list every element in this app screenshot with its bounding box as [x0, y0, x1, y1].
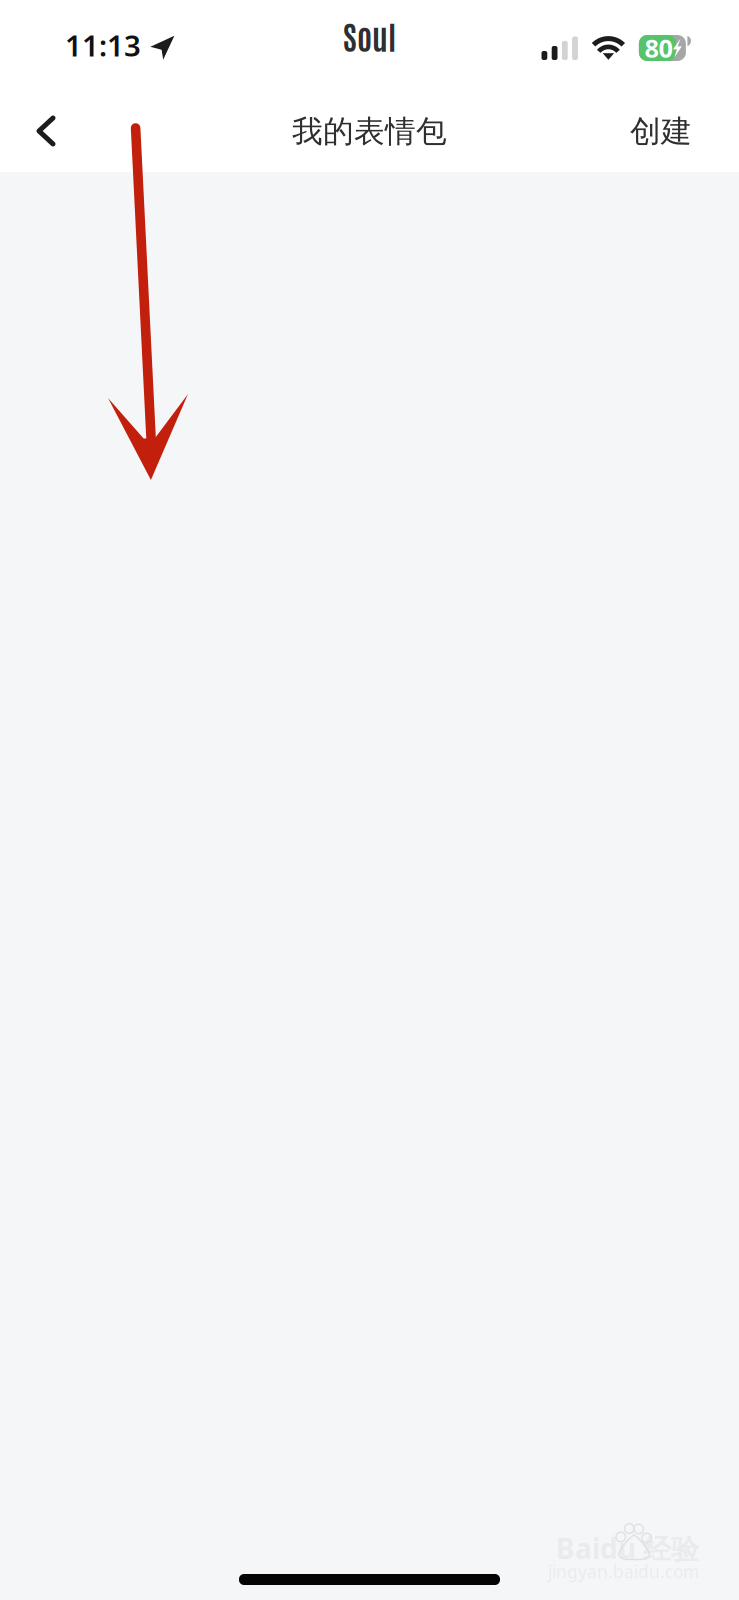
staticText: Soul — [343, 15, 396, 56]
staticText: jingyan.baidu.com — [548, 1560, 699, 1583]
staticText: 11:13 — [65, 25, 141, 64]
button[interactable]: 创建 — [616, 96, 706, 172]
staticText: Baidu 经验 — [556, 1530, 699, 1567]
staticText: 我的表情包 — [292, 113, 447, 150]
staticText: 80 — [644, 31, 672, 65]
button[interactable]: Back — [15, 96, 77, 172]
staticText: 创建 — [630, 113, 692, 150]
